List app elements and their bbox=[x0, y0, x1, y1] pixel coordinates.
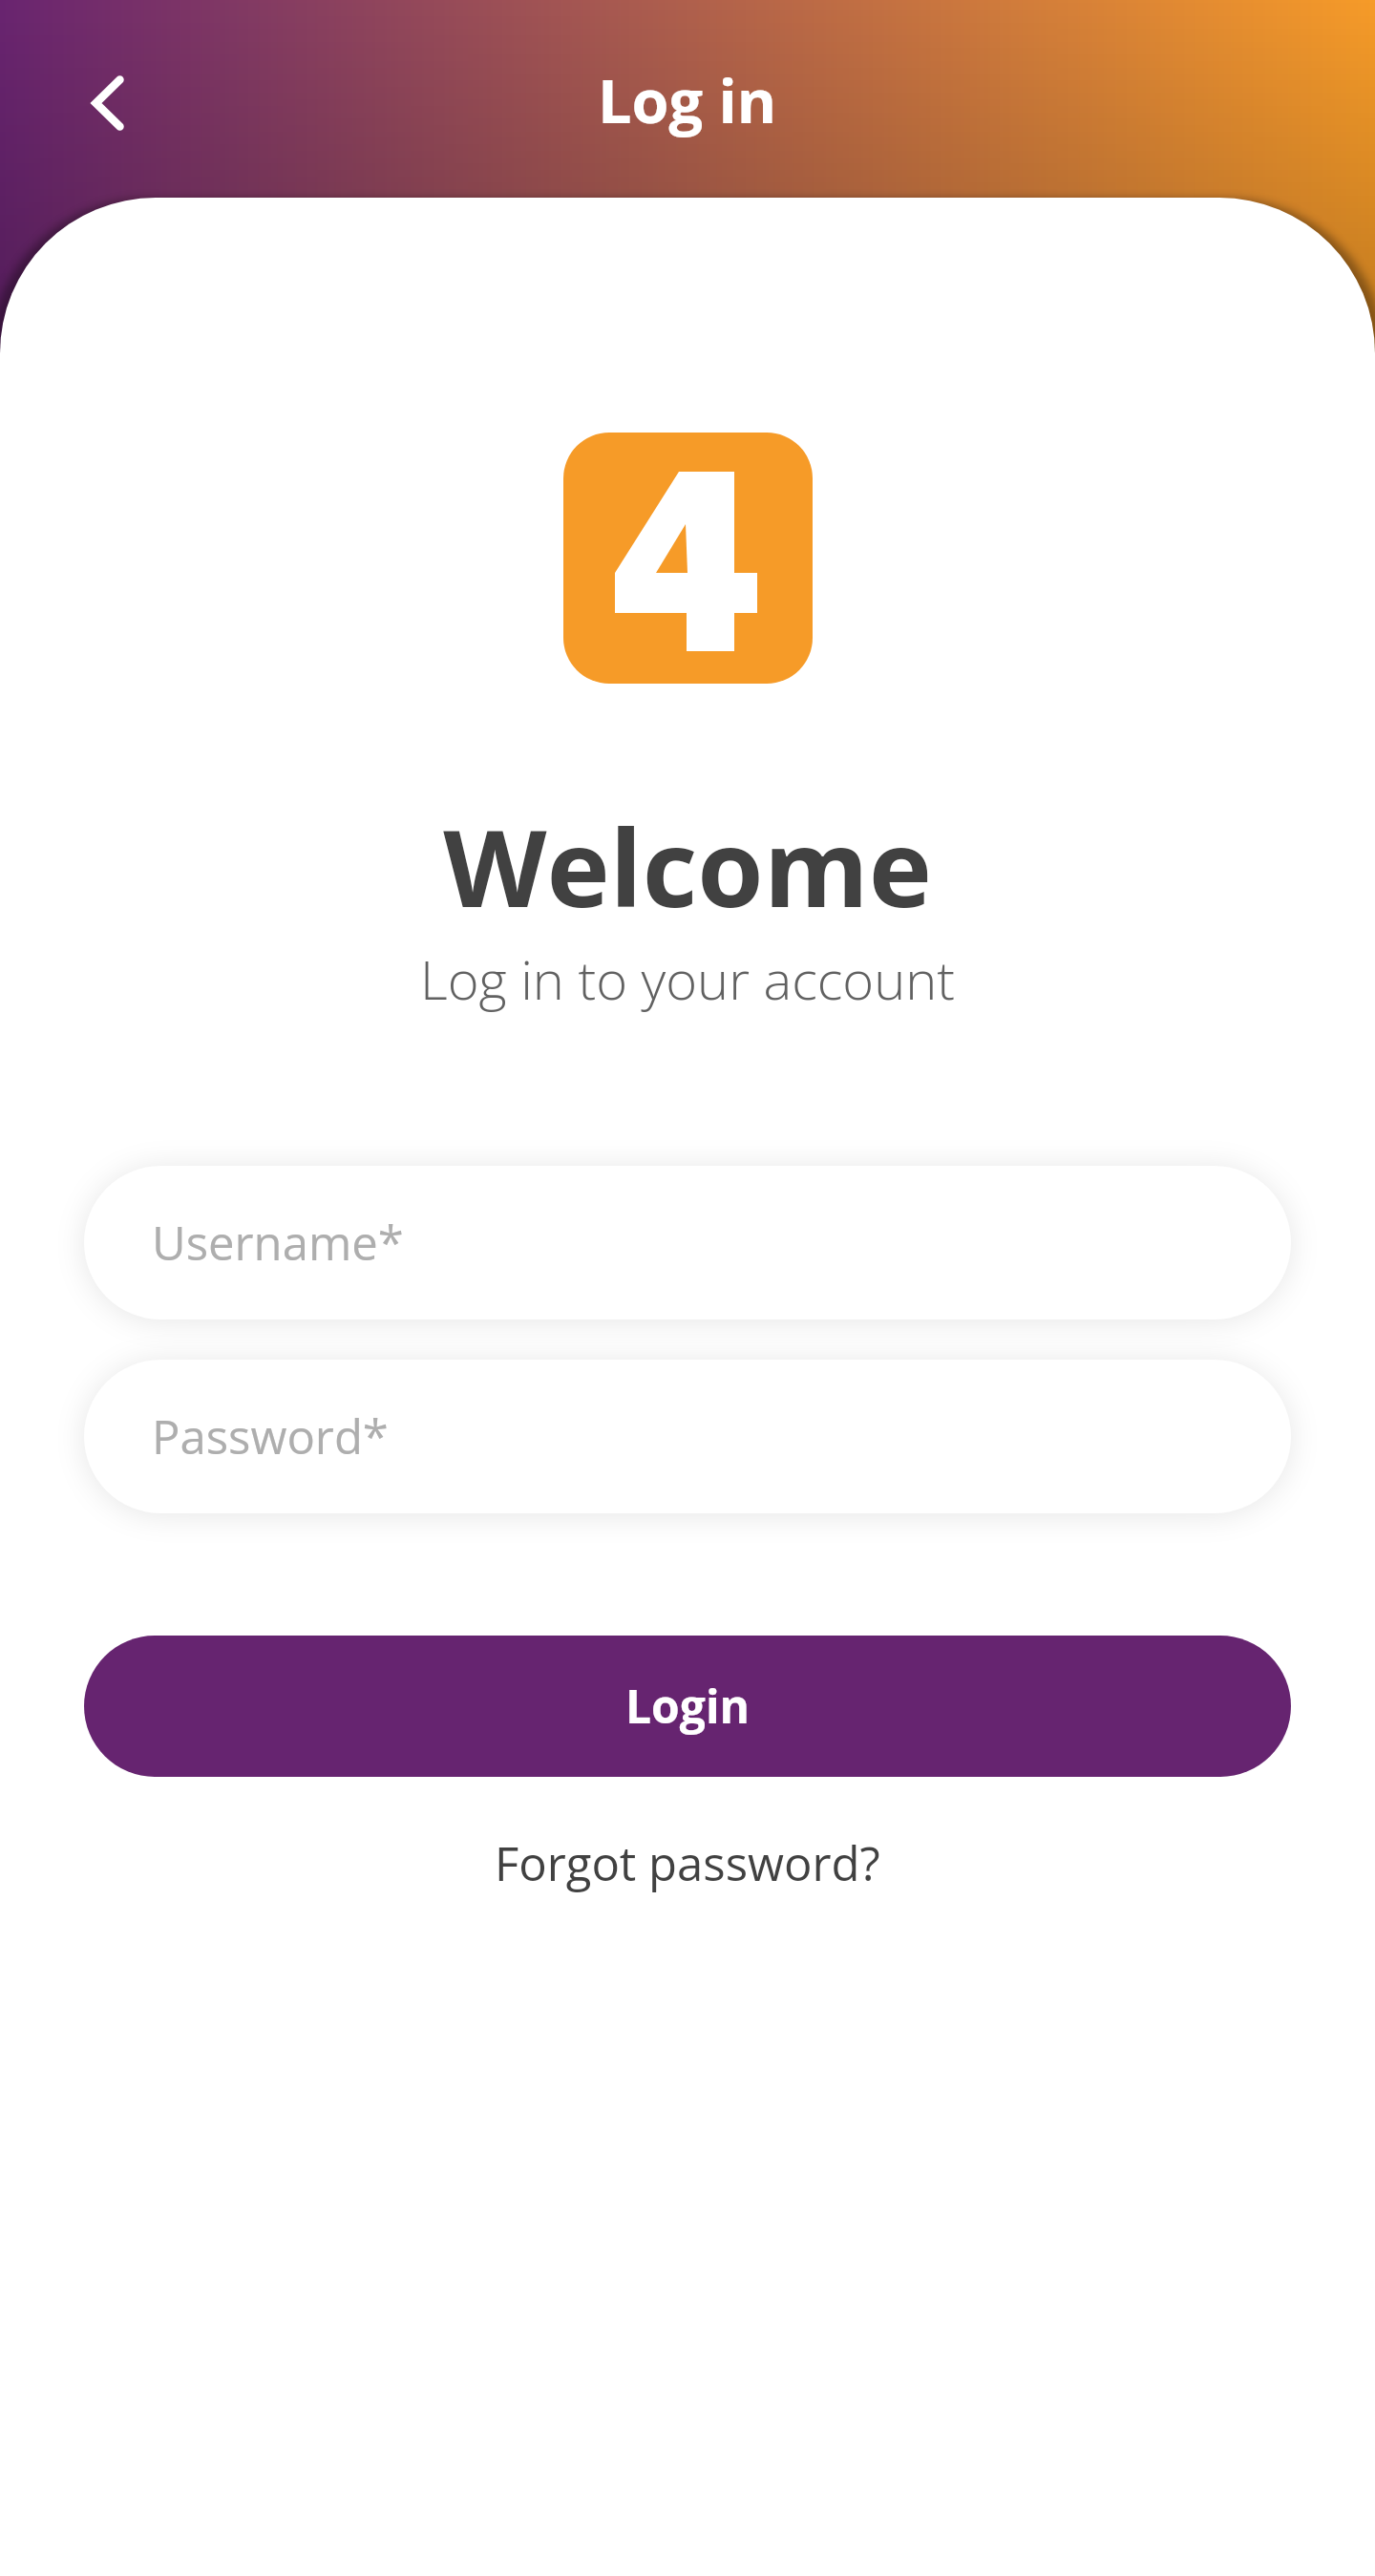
button[interactable]: Password* bbox=[84, 1360, 1291, 1513]
staticText: Password* bbox=[152, 1404, 389, 1468]
staticText: Log in to your account bbox=[0, 942, 1375, 1015]
staticText: Welcome bbox=[0, 792, 1375, 939]
button[interactable]: Username* bbox=[84, 1166, 1291, 1320]
button[interactable]: Login bbox=[84, 1636, 1291, 1777]
staticText: Login bbox=[625, 1675, 751, 1737]
staticText: Forgot password? bbox=[495, 1831, 880, 1895]
other: App logo bbox=[563, 433, 813, 684]
button[interactable]: Back bbox=[50, 45, 166, 161]
staticText: Log in bbox=[598, 59, 777, 141]
staticText: Username* bbox=[152, 1211, 404, 1275]
button[interactable]: Forgot password? bbox=[472, 1822, 903, 1905]
